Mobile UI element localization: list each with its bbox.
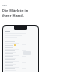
button[interactable] xyxy=(3,46,38,49)
button[interactable] xyxy=(3,61,38,64)
button[interactable] xyxy=(3,52,38,55)
button[interactable] xyxy=(3,49,38,52)
button[interactable] xyxy=(3,43,38,46)
button[interactable] xyxy=(3,55,38,58)
button[interactable] xyxy=(3,67,38,70)
staticText: NEU xyxy=(2,3,7,6)
button[interactable] xyxy=(3,64,38,67)
button[interactable] xyxy=(3,40,38,43)
button[interactable] xyxy=(3,58,38,61)
staticText: Die Märkte in ihrer Hand. xyxy=(2,8,29,18)
